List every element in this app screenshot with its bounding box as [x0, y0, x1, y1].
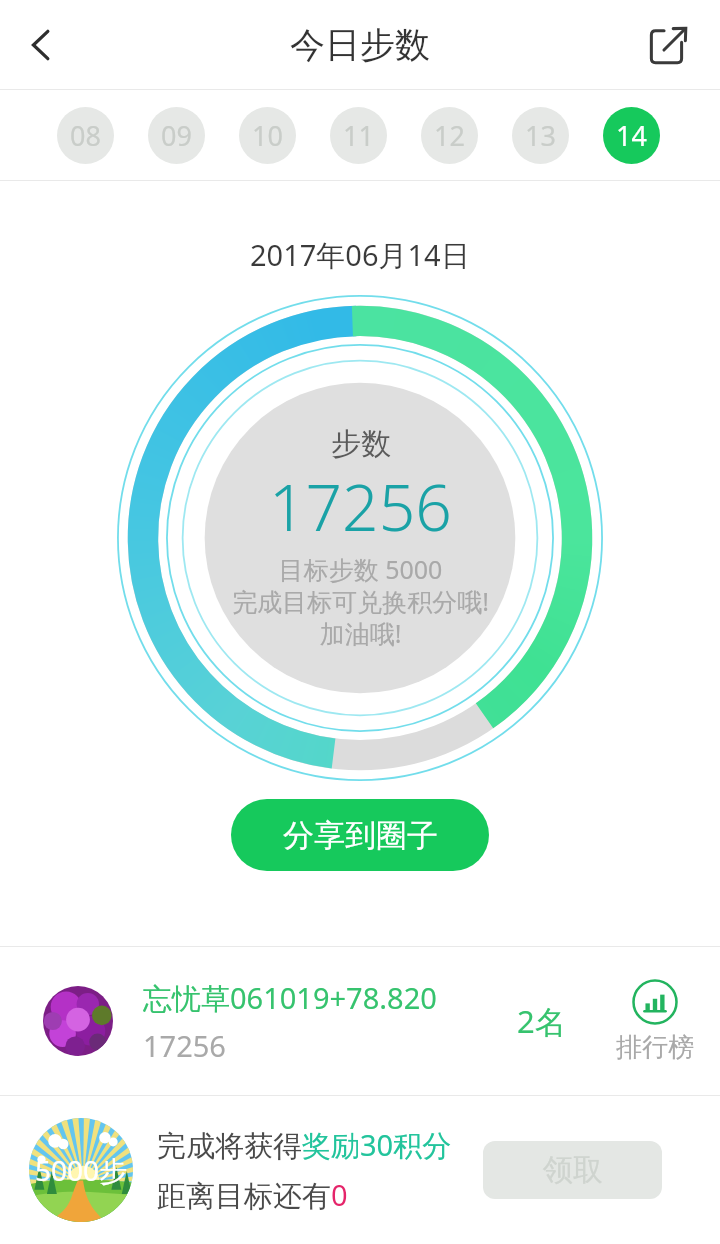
button[interactable]: 分享到圈子 [231, 799, 489, 871]
staticText: 目标步数 5000 完成目标可兑换积分哦! 加油哦! [232, 552, 489, 651]
staticText: 忘忧草061019+78.820 [143, 978, 437, 1018]
button[interactable]: 11 [330, 107, 387, 164]
button[interactable]: 08 [57, 107, 114, 164]
button[interactable]: 09 [148, 107, 205, 164]
button[interactable]: 忘忧草061019+78.820 [0, 947, 720, 1095]
staticText: 17256 [269, 463, 452, 550]
button[interactable]: 领取 [483, 1141, 662, 1199]
staticText: 11 [343, 117, 374, 154]
staticText: 距离目标还有0 [157, 1175, 348, 1215]
staticText: 排行榜 [616, 1031, 694, 1064]
staticText: 完成将获得奖励30积分 [157, 1125, 452, 1165]
staticText: 领取 [543, 1151, 603, 1189]
staticText: 10 [252, 117, 283, 154]
staticText: 14 [616, 117, 647, 154]
staticText: 2017年06月14日 [250, 235, 470, 275]
button[interactable]: Share [632, 8, 706, 82]
staticText: 5000步 [35, 1151, 128, 1189]
staticText: 分享到圈子 [283, 816, 438, 855]
button[interactable]: 13 [512, 107, 569, 164]
staticText: 17256 [143, 1026, 226, 1065]
button[interactable]: 14 [603, 107, 660, 164]
button[interactable]: 排行榜 [606, 979, 704, 1064]
staticText: 13 [525, 117, 556, 154]
staticText: 今日步数 [290, 23, 430, 67]
button[interactable]: 10 [239, 107, 296, 164]
staticText: 09 [161, 117, 192, 154]
button[interactable]: Back [4, 8, 78, 82]
staticText: 步数 [331, 425, 391, 463]
staticText: 08 [70, 117, 101, 154]
button[interactable]: 12 [421, 107, 478, 164]
staticText: 12 [434, 117, 465, 154]
staticText: 2名 [517, 1000, 566, 1042]
